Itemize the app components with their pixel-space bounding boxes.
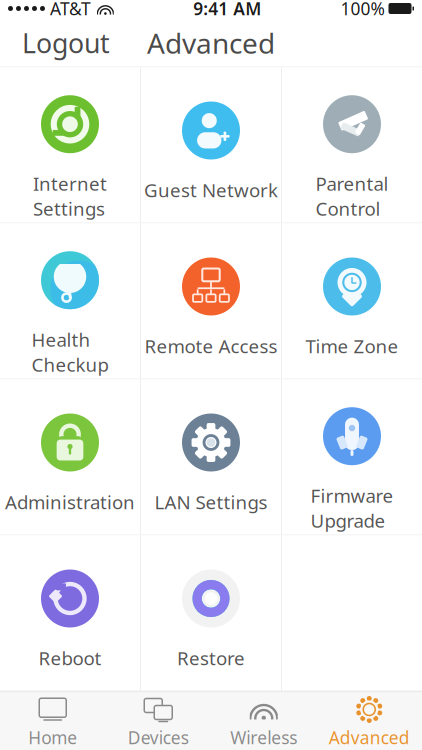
staticText: 9:41 AM bbox=[193, 0, 261, 20]
staticText: Advanced bbox=[147, 24, 275, 62]
button[interactable]: Parental Control bbox=[282, 67, 422, 222]
staticText: Restore bbox=[177, 645, 245, 670]
button[interactable]: Time Zone bbox=[282, 223, 422, 378]
button[interactable]: Internet Settings bbox=[0, 67, 140, 222]
button[interactable]: Firmware Upgrade bbox=[282, 379, 422, 534]
button[interactable]: Reboot bbox=[0, 535, 140, 690]
staticText: Home bbox=[28, 726, 77, 749]
staticText: Devices bbox=[128, 726, 189, 749]
staticText: Administration bbox=[5, 489, 135, 514]
staticText: Advanced bbox=[329, 726, 410, 749]
staticText: Reboot bbox=[38, 645, 101, 670]
button[interactable]: Guest Network bbox=[141, 67, 281, 222]
staticText: AT&T bbox=[50, 0, 91, 20]
button[interactable]: Wireless bbox=[211, 692, 316, 750]
staticText: Health Checkup bbox=[31, 327, 108, 377]
staticText: LAN Settings bbox=[154, 489, 267, 514]
staticText: Logout bbox=[22, 25, 110, 61]
staticText: Internet Settings bbox=[33, 171, 107, 221]
button[interactable]: Administration bbox=[0, 379, 140, 534]
button[interactable]: Restore bbox=[141, 535, 281, 690]
button[interactable]: Logout bbox=[0, 17, 132, 69]
button[interactable]: Health Checkup bbox=[0, 223, 140, 378]
staticText: Wireless bbox=[230, 726, 297, 749]
button[interactable]: Remote Access bbox=[141, 223, 281, 378]
staticText: Remote Access bbox=[144, 333, 277, 358]
staticText: Parental Control bbox=[315, 171, 388, 221]
staticText: Firmware Upgrade bbox=[310, 483, 393, 533]
staticText: 100% bbox=[340, 0, 384, 20]
button[interactable]: Home bbox=[0, 692, 105, 750]
staticText: Time Zone bbox=[305, 333, 398, 358]
button[interactable]: LAN Settings bbox=[141, 379, 281, 534]
staticText: Guest Network bbox=[144, 177, 278, 202]
button[interactable]: Advanced bbox=[316, 692, 422, 750]
button[interactable]: Devices bbox=[105, 692, 211, 750]
